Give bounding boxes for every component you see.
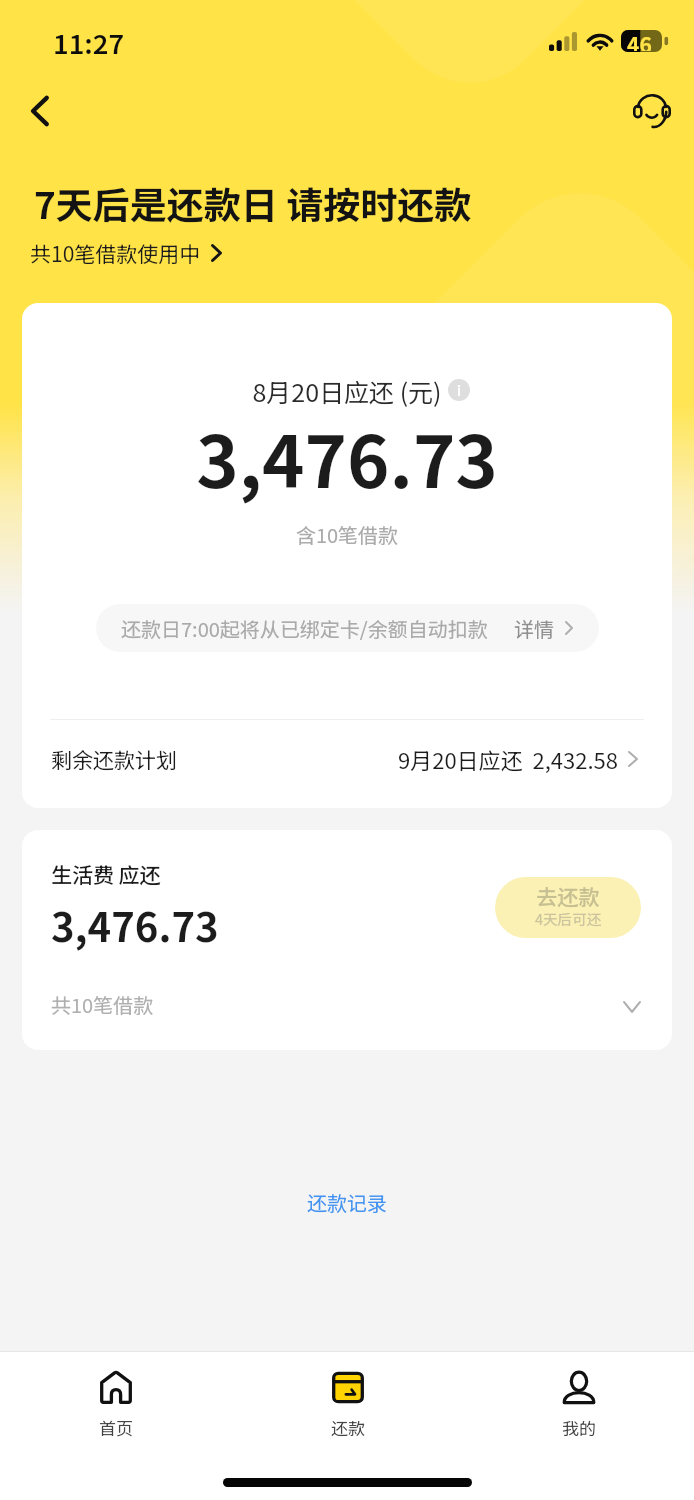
staticText: 8月20日应还 (元)	[22, 373, 672, 409]
staticText: 首页	[99, 1415, 133, 1440]
button[interactable]: 还款记录	[283, 1179, 411, 1226]
staticText: 还款日7:00起将从已绑定卡/余额自动扣款	[121, 614, 488, 643]
button[interactable]: 去还款	[495, 877, 641, 938]
button[interactable]: Info	[448, 379, 470, 401]
staticText: 还款记录	[307, 1188, 387, 1217]
staticText: 9月20日应还 2,432.58	[398, 743, 618, 775]
button[interactable]: 还款日7:00起将从已绑定卡/余额自动扣款	[96, 604, 599, 652]
staticText: 详情	[514, 614, 554, 643]
button[interactable]: Back	[17, 88, 62, 133]
staticText: 共10笔借款	[51, 990, 154, 1019]
button[interactable]: 共10笔借款	[22, 982, 672, 1026]
staticText: 还款	[331, 1415, 365, 1440]
staticText: 4天后可还	[495, 908, 641, 929]
button[interactable]: 还款	[232, 1352, 463, 1440]
staticText: 11:27	[53, 23, 125, 62]
button[interactable]: 我的	[463, 1352, 694, 1440]
staticText: 我的	[562, 1415, 596, 1440]
staticText: 3,476.73	[22, 404, 672, 508]
button[interactable]: Customer service	[627, 87, 676, 134]
staticText: 生活费 应还	[51, 859, 161, 889]
staticText: 含10笔借款	[22, 520, 672, 549]
staticText: 3,476.73	[51, 896, 219, 954]
button[interactable]: 共10笔借款使用中	[29, 235, 223, 271]
staticText: 7天后是还款日 请按时还款	[34, 176, 472, 230]
staticText: 剩余还款计划	[51, 744, 177, 774]
staticText: 共10笔借款使用中	[30, 238, 201, 268]
staticText: 去还款	[495, 881, 641, 911]
button[interactable]: 剩余还款计划	[22, 715, 672, 803]
staticText: i	[457, 381, 461, 400]
button[interactable]: 首页	[0, 1352, 232, 1440]
staticText: 46	[627, 29, 652, 51]
